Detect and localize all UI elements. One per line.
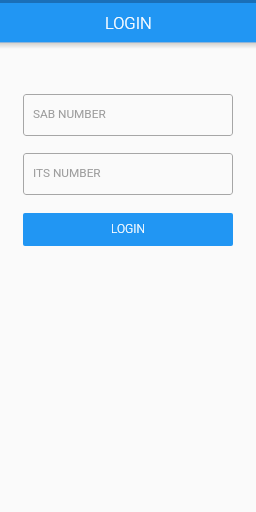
button[interactable]: LOGIN — [23, 213, 233, 246]
button[interactable]: ITS NUMBER — [23, 153, 233, 195]
staticText: LOGIN — [111, 222, 145, 236]
button[interactable]: SAB NUMBER — [23, 94, 233, 136]
staticText: SAB NUMBER — [33, 107, 106, 121]
staticText: LOGIN — [105, 14, 152, 33]
staticText: ITS NUMBER — [33, 166, 101, 180]
